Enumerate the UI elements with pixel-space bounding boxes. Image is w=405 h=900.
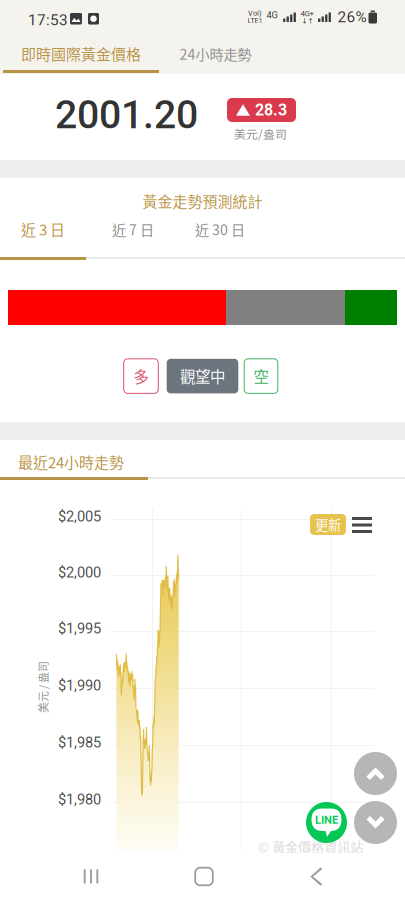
staticText: $1,985 xyxy=(58,734,101,751)
staticText: $2,005 xyxy=(58,508,101,525)
staticText: 空 xyxy=(253,365,268,387)
button[interactable]: Chart menu xyxy=(352,517,372,533)
staticText: 即時國際黃金價格 xyxy=(21,43,141,64)
staticText: 觀望中 xyxy=(180,365,225,387)
button[interactable]: 即時國際黃金價格 xyxy=(3,35,159,72)
staticText: 28.3 xyxy=(255,101,287,119)
staticText: © 黃金價格資訊站 xyxy=(258,837,363,856)
button[interactable]: 24小時走勢 xyxy=(163,35,268,72)
staticText: 美元/盎司 xyxy=(234,125,287,142)
button[interactable]: Scroll down xyxy=(354,801,397,844)
button[interactable]: 近 3 日 xyxy=(0,212,86,246)
staticText: 更新 xyxy=(315,515,341,534)
staticText: 26% xyxy=(337,8,366,26)
staticText: $2,000 xyxy=(58,564,101,581)
button[interactable]: 更新 xyxy=(310,514,346,535)
staticText: 近 7 日 xyxy=(112,219,154,239)
button[interactable]: 多 xyxy=(124,359,158,393)
button[interactable]: 觀望中 xyxy=(167,359,238,393)
staticText: LINE xyxy=(315,813,338,826)
button[interactable]: Back xyxy=(277,853,355,900)
staticText: $1,995 xyxy=(58,620,101,637)
staticText: 近 30 日 xyxy=(195,219,245,239)
staticText: 近 3 日 xyxy=(21,218,65,240)
staticText: LTE1 xyxy=(247,16,262,25)
staticText: 最近24小時走勢 xyxy=(18,451,124,473)
staticText: 4G xyxy=(266,9,277,20)
button[interactable]: Recent apps xyxy=(52,853,130,900)
staticText: 多 xyxy=(133,365,148,387)
staticText: $1,980 xyxy=(58,791,101,808)
button[interactable]: 近 7 日 xyxy=(91,212,175,246)
staticText: 2001.20 xyxy=(55,92,198,138)
staticText: 4G+ xyxy=(300,9,314,18)
staticText: 24小時走勢 xyxy=(179,43,251,64)
button[interactable]: Share to LINE xyxy=(306,802,347,843)
staticText: VoI) xyxy=(248,9,262,17)
staticText: 黃金走勢預測統計 xyxy=(142,190,262,212)
staticText: $1,990 xyxy=(58,677,101,694)
button[interactable]: 空 xyxy=(244,359,278,393)
staticText: 美元 / 盎司 xyxy=(17,679,69,695)
button[interactable]: Scroll up xyxy=(354,752,397,795)
button[interactable]: Home xyxy=(165,853,243,900)
button[interactable]: 近 30 日 xyxy=(175,212,265,246)
staticText: 17:53 xyxy=(28,11,68,29)
staticText: ↓↑ xyxy=(301,17,313,25)
